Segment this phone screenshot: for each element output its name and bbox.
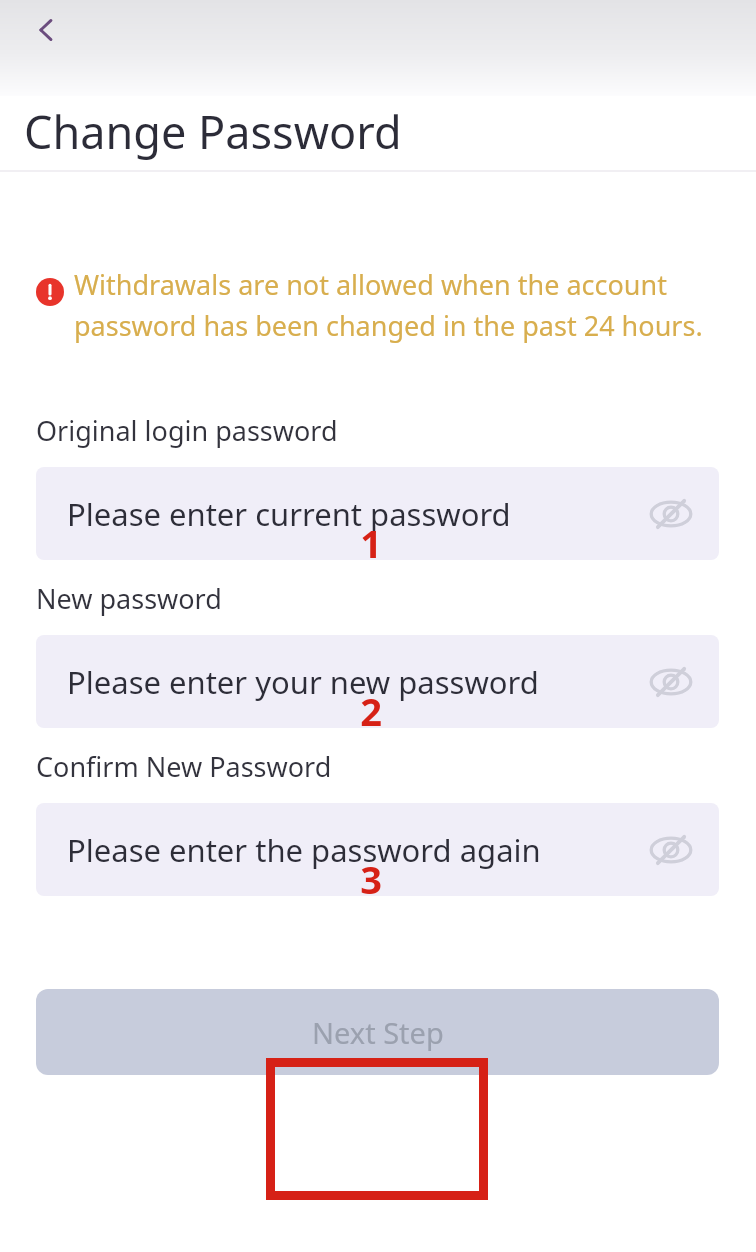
staticText: Please enter the password again bbox=[67, 829, 649, 871]
button[interactable]: Please enter current password bbox=[36, 467, 719, 560]
button[interactable]: Please enter the password again bbox=[36, 803, 719, 896]
staticText: New password bbox=[36, 580, 222, 617]
staticText: Withdrawals are not allowed when the acc… bbox=[74, 266, 726, 344]
staticText: 1 bbox=[331, 517, 411, 569]
button[interactable]: Show password bbox=[649, 660, 693, 704]
button[interactable]: Next Step bbox=[36, 989, 719, 1075]
button[interactable]: Please enter your new password bbox=[36, 635, 719, 728]
button[interactable]: Show password bbox=[649, 492, 693, 536]
staticText: Confirm New Password bbox=[36, 748, 332, 785]
button[interactable]: Back bbox=[20, 2, 76, 58]
staticText: 2 bbox=[331, 685, 411, 737]
staticText: Please enter your new password bbox=[67, 661, 649, 703]
staticText: 3 bbox=[331, 853, 411, 905]
button[interactable]: Show password bbox=[649, 828, 693, 872]
staticText: Change Password bbox=[24, 101, 402, 162]
staticText: Original login password bbox=[36, 412, 338, 449]
staticText: Please enter current password bbox=[67, 493, 649, 535]
staticText: Next Step bbox=[312, 1013, 444, 1052]
